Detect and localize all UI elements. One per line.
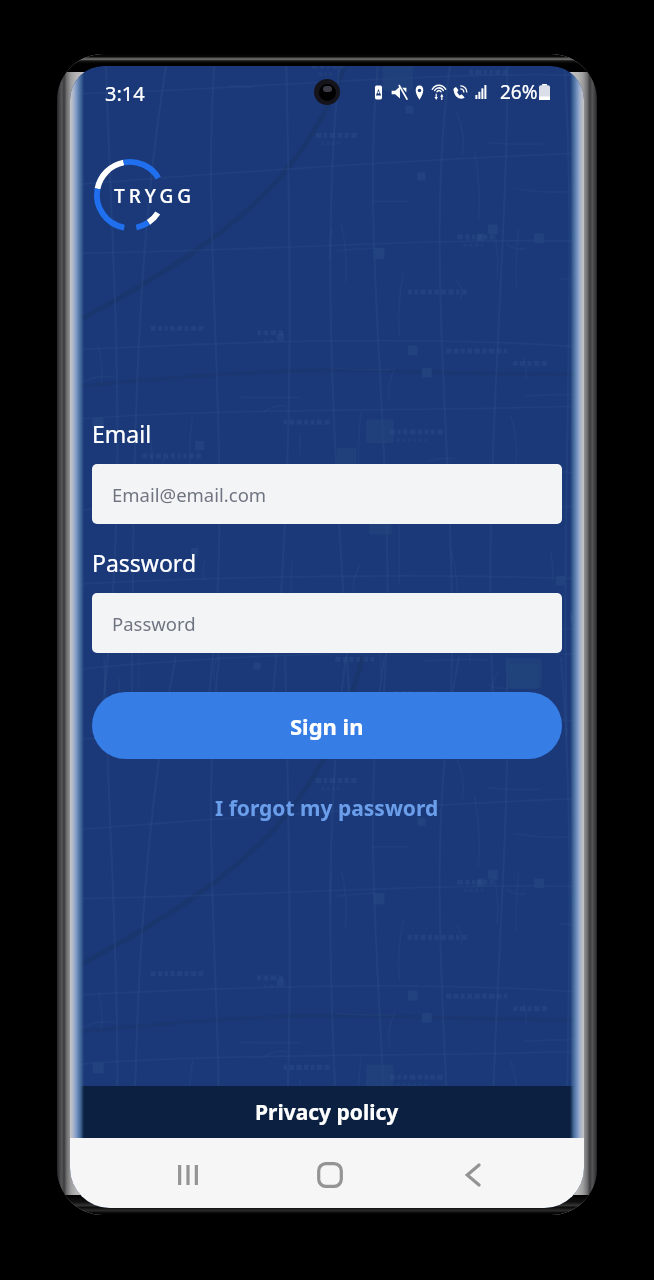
button[interactable]: Home xyxy=(307,1152,353,1198)
staticText: Sign in xyxy=(290,711,364,741)
button[interactable]: Privacy policy xyxy=(70,1086,584,1138)
button[interactable]: I forgot my password xyxy=(92,786,562,831)
button[interactable]: Recent apps xyxy=(165,1152,211,1198)
staticText: I forgot my password xyxy=(215,794,439,823)
staticText: Email xyxy=(92,418,152,449)
staticText: Email@email.com xyxy=(112,482,267,507)
button[interactable]: Sign in xyxy=(92,692,562,759)
staticText: TRYGG xyxy=(114,183,196,209)
button[interactable]: Email@email.com xyxy=(92,464,562,524)
staticText: Password xyxy=(92,547,197,578)
button[interactable]: Password xyxy=(92,593,562,653)
staticText: 26% xyxy=(500,79,538,105)
staticText: Privacy policy xyxy=(255,1098,399,1127)
button[interactable]: Back xyxy=(450,1152,496,1198)
staticText: 3:14 xyxy=(105,80,145,107)
staticText: Password xyxy=(112,611,196,636)
